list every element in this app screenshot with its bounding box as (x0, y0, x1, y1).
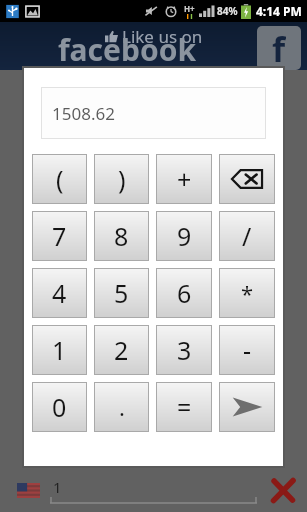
button[interactable]: 6 (156, 268, 212, 318)
button[interactable]: Facebook (257, 26, 301, 70)
staticText: 84% (217, 4, 238, 18)
button[interactable]: Like us on (0, 22, 307, 70)
staticText: - (243, 333, 252, 367)
staticText: 3 (177, 333, 192, 367)
button[interactable]: 0 (32, 382, 87, 432)
staticText: Like us on (122, 25, 203, 48)
button[interactable]: ( (32, 154, 87, 204)
staticText: 7 (52, 219, 67, 253)
staticText: . (119, 392, 125, 422)
staticText: H+ (184, 3, 195, 14)
button[interactable]: / (219, 211, 275, 261)
button[interactable]: = (156, 382, 212, 432)
button[interactable]: 9 (156, 211, 212, 261)
staticText: 1508.62 (52, 102, 115, 125)
staticText: ) (118, 162, 126, 196)
staticText: facebook (58, 29, 197, 70)
button[interactable]: 1508.62 (41, 87, 266, 139)
staticText: 6 (177, 276, 192, 310)
button[interactable]: + (156, 154, 212, 204)
staticText: f (272, 26, 286, 70)
staticText: 9 (177, 219, 192, 253)
button[interactable]: 2 (94, 325, 149, 375)
button[interactable]: * (219, 268, 275, 318)
staticText: * (241, 278, 254, 308)
staticText: 1 (53, 477, 62, 497)
staticText: 4 (52, 276, 67, 310)
button[interactable]: 5 (94, 268, 149, 318)
button[interactable]: 3 (156, 325, 212, 375)
staticText: / (242, 219, 252, 253)
staticText: 0 (52, 390, 67, 424)
button[interactable]: Backspace (219, 154, 275, 204)
button[interactable]: 1 (50, 475, 257, 505)
button[interactable]: 7 (32, 211, 87, 261)
button[interactable]: 1 (32, 325, 87, 375)
staticText: 4:14 PM (256, 3, 302, 19)
staticText: 8 (114, 219, 129, 253)
button[interactable]: 4 (32, 268, 87, 318)
staticText: ( (56, 162, 64, 196)
staticText: = (177, 390, 192, 424)
staticText: 1 (52, 333, 67, 367)
button[interactable]: 8 (94, 211, 149, 261)
button[interactable]: Language (17, 483, 40, 498)
button[interactable]: Clear (269, 476, 297, 504)
button[interactable]: ) (94, 154, 149, 204)
button[interactable]: . (94, 382, 149, 432)
button[interactable]: Send (219, 382, 275, 432)
staticText: + (177, 162, 192, 196)
staticText: 5 (114, 276, 129, 310)
button[interactable]: - (219, 325, 275, 375)
staticText: 2 (114, 333, 129, 367)
